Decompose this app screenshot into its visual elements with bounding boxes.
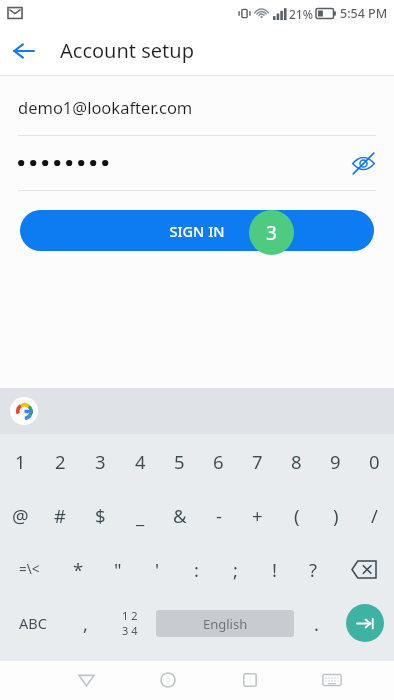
- staticText: English: [203, 615, 248, 633]
- button[interactable]: 4: [120, 434, 160, 488]
- button[interactable]: !: [255, 542, 294, 596]
- button[interactable]: 6: [199, 434, 238, 488]
- button[interactable]: =\<: [0, 542, 58, 596]
- button[interactable]: ,: [65, 596, 105, 650]
- staticText: 8: [291, 449, 302, 474]
- staticText: ;: [233, 557, 238, 582]
- button[interactable]: 2: [40, 434, 80, 488]
- staticText: !: [272, 557, 277, 582]
- button[interactable]: ?: [294, 542, 333, 596]
- staticText: #: [54, 503, 66, 528]
- button[interactable]: .: [296, 596, 336, 650]
- staticText: ?: [309, 557, 318, 582]
- button[interactable]: /: [355, 488, 394, 542]
- staticText: _: [136, 503, 145, 528]
- button[interactable]: Show password: [0, 136, 394, 190]
- staticText: /: [371, 503, 378, 528]
- button[interactable]: *: [58, 542, 98, 596]
- staticText: ,: [83, 611, 88, 636]
- staticText: (: [294, 503, 300, 528]
- staticText: ABC: [19, 613, 47, 633]
- staticText: $: [95, 503, 106, 528]
- staticText: Account setup: [60, 37, 194, 64]
- button[interactable]: Google: [10, 397, 38, 425]
- button[interactable]: +: [238, 488, 277, 542]
- button[interactable]: Recents: [209, 660, 291, 700]
- button[interactable]: 3: [249, 210, 294, 255]
- staticText: +: [252, 503, 263, 528]
- button[interactable]: Back: [0, 27, 48, 75]
- staticText: ': [155, 557, 160, 582]
- staticText: 5:54 PM: [340, 5, 388, 22]
- staticText: 3: [95, 449, 106, 474]
- staticText: 7: [252, 449, 263, 474]
- button[interactable]: Show password: [342, 142, 384, 184]
- staticText: ): [333, 503, 339, 528]
- button[interactable]: ): [316, 488, 355, 542]
- staticText: 5: [174, 449, 185, 474]
- button[interactable]: (: [277, 488, 316, 542]
- button[interactable]: $: [80, 488, 120, 542]
- button[interactable]: Back: [45, 660, 127, 700]
- staticText: =\<: [19, 560, 40, 578]
- staticText: :: [194, 557, 199, 582]
- button[interactable]: ABC: [0, 596, 65, 650]
- button[interactable]: 9: [316, 434, 355, 488]
- button[interactable]: Enter: [346, 604, 384, 642]
- button[interactable]: _: [120, 488, 160, 542]
- button[interactable]: SIGN IN: [20, 210, 374, 251]
- staticText: ": [114, 557, 122, 582]
- staticText: SIGN IN: [169, 221, 225, 241]
- button[interactable]: #: [40, 488, 80, 542]
- button[interactable]: ;: [216, 542, 255, 596]
- staticText: 21%: [289, 6, 313, 22]
- staticText: @: [12, 503, 29, 528]
- staticText: 0: [369, 449, 380, 474]
- button[interactable]: -: [199, 488, 238, 542]
- button[interactable]: 1: [0, 434, 40, 488]
- button[interactable]: 5: [160, 434, 199, 488]
- button[interactable]: 8: [277, 434, 316, 488]
- staticText: &: [173, 503, 187, 528]
- button[interactable]: Home: [127, 660, 209, 700]
- staticText: 1 2: [122, 608, 138, 623]
- button[interactable]: :: [177, 542, 216, 596]
- button[interactable]: 0: [355, 434, 394, 488]
- staticText: *: [73, 557, 84, 582]
- staticText: 2: [55, 449, 66, 474]
- staticText: 9: [330, 449, 341, 474]
- staticText: 6: [213, 449, 224, 474]
- staticText: 4: [135, 449, 146, 474]
- button[interactable]: 7: [238, 434, 277, 488]
- staticText: 3 4: [122, 623, 138, 638]
- button[interactable]: English: [156, 610, 294, 637]
- staticText: 3: [266, 220, 277, 246]
- button[interactable]: @: [0, 488, 40, 542]
- staticText: 1: [15, 449, 26, 474]
- button[interactable]: Keyboard: [291, 660, 373, 700]
- button[interactable]: ': [138, 542, 177, 596]
- button[interactable]: ": [98, 542, 138, 596]
- staticText: -: [216, 503, 222, 528]
- staticText: demo1@lookafter.com: [18, 96, 193, 118]
- button[interactable]: Backspace: [333, 542, 394, 596]
- button[interactable]: 3: [80, 434, 120, 488]
- staticText: .: [314, 611, 319, 636]
- button[interactable]: 1 2: [105, 596, 154, 650]
- button[interactable]: &: [160, 488, 199, 542]
- button[interactable]: demo1@lookafter.com: [18, 93, 376, 121]
